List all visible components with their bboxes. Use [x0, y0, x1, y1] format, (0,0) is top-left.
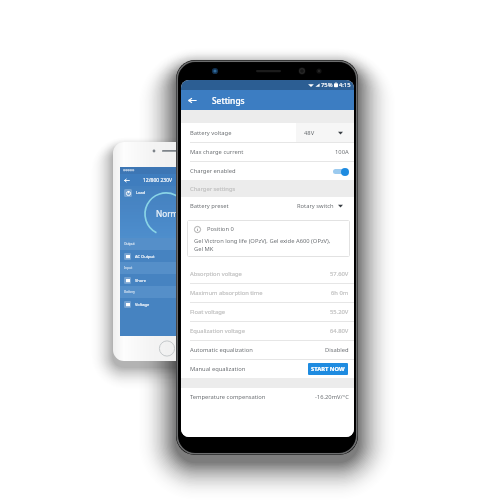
staticText: ●●●●●: [123, 169, 135, 172]
staticText: Load: [136, 190, 146, 195]
staticText: 48V: [304, 129, 315, 137]
staticText: Equalization voltage: [190, 327, 245, 335]
staticText: 64.80V: [330, 327, 349, 335]
button[interactable]: Charger enabled: [181, 162, 354, 180]
staticText: Battery: [124, 290, 135, 294]
staticText: Automatic equalization: [190, 346, 253, 354]
staticText: Charger settings: [190, 185, 236, 193]
staticText: Charger enabled: [190, 167, 236, 175]
button[interactable]: Battery voltage: [181, 123, 354, 142]
staticText: 4:15: [339, 81, 351, 89]
staticText: 100A: [335, 148, 349, 156]
staticText: Disabled: [325, 346, 349, 354]
staticText: Settings: [212, 95, 245, 106]
staticText: 100%: [205, 169, 212, 173]
staticText: Position 0: [207, 225, 234, 233]
staticText: Max charge current: [190, 148, 244, 156]
staticText: Output: [124, 242, 135, 246]
button[interactable]: Absorption voltage: [181, 265, 354, 283]
button[interactable]: Automatic equalization: [181, 341, 354, 359]
staticText: Battery voltage: [190, 129, 232, 137]
staticText: -16.20mV/°C: [315, 393, 349, 401]
staticText: 75%: [321, 81, 333, 89]
staticText: Input: [124, 266, 133, 270]
staticText: Float voltage: [190, 308, 225, 316]
staticText: START NOW: [311, 365, 345, 373]
staticText: Rotary switch: [297, 202, 334, 210]
staticText: 6h 0m: [331, 289, 349, 297]
staticText: Absorption voltage: [190, 270, 242, 278]
button[interactable]: Temperature compensation: [181, 388, 354, 406]
staticText: 55.20V: [330, 308, 349, 316]
button[interactable]: Max charge current: [181, 143, 354, 161]
staticText: Temperature compensation: [190, 393, 266, 401]
staticText: AC Output: [135, 254, 155, 259]
staticText: 12/800 230V: [143, 177, 173, 184]
staticText: Manual equalization: [190, 365, 246, 373]
button[interactable]: START NOW: [308, 363, 348, 375]
button[interactable]: Back: [183, 91, 201, 109]
staticText: 57.60V: [330, 270, 349, 278]
staticText: Maximum absorption time: [190, 289, 263, 297]
button[interactable]: Float voltage: [181, 303, 354, 321]
button[interactable]: Maximum absorption time: [181, 284, 354, 302]
button[interactable]: Equalization voltage: [181, 322, 354, 340]
button[interactable]: Battery preset: [181, 197, 354, 215]
staticText: Battery preset: [190, 202, 229, 210]
staticText: Norm: [156, 208, 179, 219]
staticText: Gel Victron long life (OPzV), Gel exide …: [194, 237, 331, 252]
staticText: Voltage: [135, 302, 150, 307]
staticText: Shore: [135, 278, 146, 283]
